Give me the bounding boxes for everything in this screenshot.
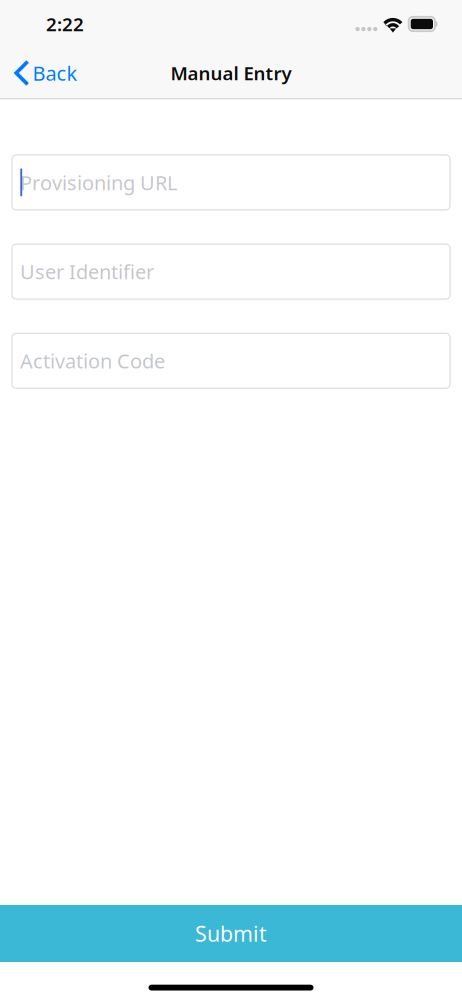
staticText: Manual Entry [170,61,291,85]
staticText: User Identifier [20,258,154,285]
staticText: 2:22 [46,12,84,36]
staticText: Provisioning URL [20,169,177,196]
button[interactable]: User Identifier [12,244,450,299]
staticText: Activation Code [20,347,165,374]
staticText: Back [32,60,77,86]
button[interactable]: Provisioning URL [12,155,450,210]
staticText: Submit [195,919,267,948]
button[interactable]: Activation Code [12,333,450,388]
button[interactable]: Submit [0,905,462,962]
button[interactable]: Back [0,48,89,98]
